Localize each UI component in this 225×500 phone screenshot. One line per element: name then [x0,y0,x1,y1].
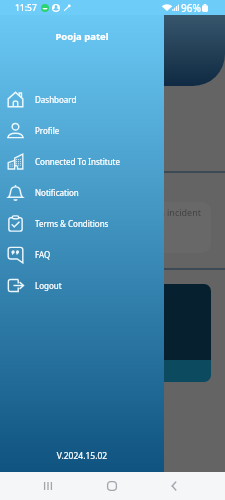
staticText: Logout [35,280,62,291]
staticText: Terms & Conditions [35,218,109,229]
button[interactable]: Connected To Institute [0,146,164,177]
button[interactable]: Logout [0,270,164,301]
staticText: Notification [35,187,79,198]
button[interactable]: Home [98,472,126,500]
button[interactable]: Back [160,472,188,500]
staticText: 11:57 [15,2,37,14]
staticText: Connected To Institute [35,156,121,167]
staticText: Dashboard [35,94,77,105]
button[interactable]: Recent apps [34,472,62,500]
button[interactable]: Profile [0,115,164,146]
staticText: Profile [35,125,60,136]
staticText: Pooja patel [0,30,164,43]
button[interactable]: Dashboard [0,84,164,115]
button[interactable]: Terms & Conditions [0,208,164,239]
staticText: Select a task to report as incident [24,206,201,218]
staticText: 96% [181,1,201,15]
staticText: V.2024.15.02 [0,450,164,462]
button[interactable]: Notification [0,177,164,208]
button[interactable]: FAQ [0,239,164,270]
staticText: FAQ [35,249,51,260]
